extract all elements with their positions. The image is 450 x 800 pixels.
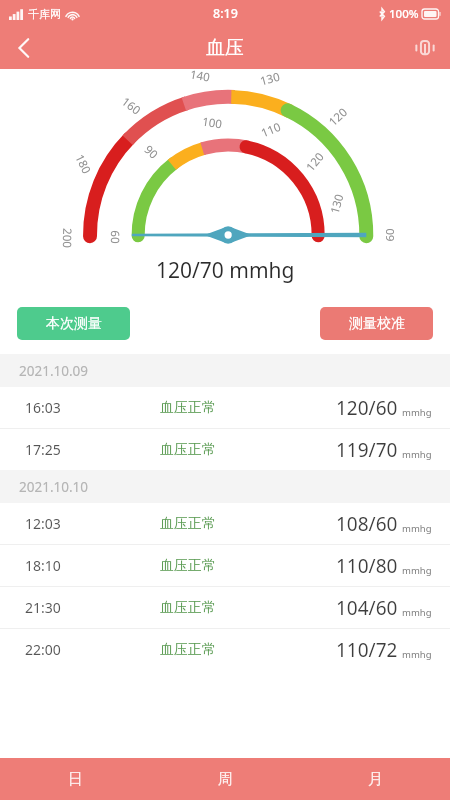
staticText: 90 bbox=[140, 141, 162, 163]
staticText: 18:10 bbox=[25, 556, 61, 575]
staticText: mmhg bbox=[402, 406, 432, 419]
staticText: 108/60 bbox=[336, 511, 398, 537]
staticText: 120 bbox=[325, 104, 351, 130]
button[interactable]: 21:30 bbox=[0, 587, 450, 628]
button[interactable]: Connect device bbox=[400, 27, 450, 69]
staticText: 21:30 bbox=[25, 598, 61, 617]
staticText: 160 bbox=[118, 94, 144, 118]
button[interactable]: 12:03 bbox=[0, 503, 450, 544]
staticText: 12:03 bbox=[25, 514, 61, 533]
staticText: 测量校准 bbox=[349, 315, 405, 333]
staticText: 8:19 bbox=[213, 5, 238, 22]
staticText: 22:00 bbox=[25, 640, 61, 659]
staticText: 2021.10.09 bbox=[19, 362, 89, 380]
staticText: 120/60 bbox=[336, 395, 398, 421]
staticText: 120 bbox=[302, 149, 327, 175]
staticText: 100% bbox=[389, 6, 419, 22]
staticText: 130 bbox=[327, 192, 347, 216]
staticText: 血压 bbox=[206, 36, 244, 60]
staticText: 血压正常 bbox=[160, 599, 216, 617]
staticText: 140 bbox=[189, 66, 211, 86]
button[interactable]: 16:03 bbox=[0, 387, 450, 428]
button[interactable]: 日 bbox=[0, 758, 150, 800]
staticText: 120/70 mmhg bbox=[156, 256, 295, 285]
staticText: 110 bbox=[259, 119, 283, 141]
staticText: 血压正常 bbox=[160, 557, 216, 575]
staticText: 60 bbox=[382, 228, 398, 242]
staticText: 周 bbox=[218, 770, 233, 789]
staticText: 100 bbox=[201, 114, 223, 132]
staticText: 200 bbox=[59, 228, 75, 248]
staticText: 119/70 bbox=[336, 437, 398, 463]
staticText: 血压正常 bbox=[160, 641, 216, 659]
staticText: 2021.10.10 bbox=[19, 478, 89, 496]
staticText: 血压正常 bbox=[160, 515, 216, 533]
staticText: mmhg bbox=[402, 522, 432, 535]
staticText: 16:03 bbox=[25, 398, 61, 417]
staticText: mmhg bbox=[402, 564, 432, 577]
button[interactable]: Back bbox=[0, 27, 48, 69]
staticText: 180 bbox=[71, 151, 94, 176]
button[interactable]: 18:10 bbox=[0, 545, 450, 586]
button[interactable]: 17:25 bbox=[0, 429, 450, 470]
staticText: 血压正常 bbox=[160, 399, 216, 417]
staticText: mmhg bbox=[402, 648, 432, 661]
staticText: mmhg bbox=[402, 606, 432, 619]
staticText: 130 bbox=[258, 69, 282, 89]
staticText: 月 bbox=[368, 770, 383, 789]
button[interactable]: 测量校准 bbox=[320, 307, 433, 340]
staticText: mmhg bbox=[402, 448, 432, 461]
staticText: 60 bbox=[107, 230, 123, 244]
button[interactable]: 月 bbox=[300, 758, 450, 800]
staticText: 110/80 bbox=[336, 553, 398, 579]
staticText: 本次测量 bbox=[46, 315, 102, 333]
staticText: 110/72 bbox=[336, 637, 398, 663]
button[interactable]: 22:00 bbox=[0, 629, 450, 670]
button[interactable]: 本次测量 bbox=[17, 307, 130, 340]
staticText: 日 bbox=[68, 770, 83, 789]
staticText: 千库网 bbox=[28, 7, 61, 21]
button[interactable]: 周 bbox=[150, 758, 300, 800]
staticText: 血压正常 bbox=[160, 441, 216, 459]
staticText: 104/60 bbox=[336, 595, 398, 621]
staticText: 17:25 bbox=[25, 440, 61, 459]
